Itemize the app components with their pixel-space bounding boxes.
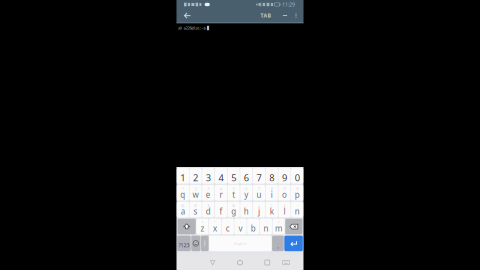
button[interactable]: : (234, 219, 247, 234)
button[interactable]: 5 (228, 185, 240, 200)
staticText: + (258, 203, 260, 208)
button[interactable]: Switch keyboard (277, 255, 295, 270)
button[interactable] (253, 168, 265, 184)
button[interactable]: 6 (240, 185, 252, 200)
button[interactable]: + (253, 202, 265, 217)
button[interactable]: ! (260, 219, 272, 234)
button[interactable]: " (209, 219, 221, 234)
button[interactable] (177, 168, 189, 184)
staticText: ?123 (178, 242, 189, 249)
staticText: i (271, 189, 273, 200)
staticText: * (201, 220, 203, 225)
staticText: 2 (194, 186, 196, 191)
staticText: English (234, 241, 246, 246)
staticText: e (206, 189, 211, 200)
button[interactable]: ) (278, 202, 291, 217)
button[interactable]: Back (178, 9, 195, 22)
staticText: v (238, 223, 242, 234)
button[interactable]: Home (226, 255, 254, 270)
staticText: & (232, 203, 235, 208)
staticText: : (240, 220, 241, 225)
button[interactable]: _ (215, 202, 227, 217)
staticText: 6 (245, 186, 247, 191)
button[interactable]: 3 (202, 185, 214, 200)
button[interactable]: 0 (291, 185, 303, 200)
staticText: n (263, 223, 268, 234)
button[interactable] (240, 168, 252, 184)
button[interactable] (291, 168, 303, 184)
button[interactable]: - (240, 202, 252, 217)
button[interactable] (228, 168, 240, 184)
staticText: 2 (193, 171, 198, 184)
staticText: _ (220, 203, 222, 208)
staticText: ) (284, 203, 285, 208)
staticText: ( (271, 203, 272, 208)
staticText: TAB (260, 12, 271, 19)
button[interactable] (266, 168, 278, 184)
button[interactable]: More options (292, 9, 299, 22)
button[interactable]: ' (222, 219, 234, 234)
button[interactable]: ? (272, 219, 285, 234)
staticText: 9 (283, 186, 285, 191)
button[interactable] (278, 168, 291, 184)
staticText: 4 (218, 171, 223, 184)
button[interactable]: 7 (253, 185, 265, 200)
staticText: # (194, 203, 197, 208)
staticText: 8 (269, 171, 274, 184)
button[interactable]: ~ (291, 202, 303, 217)
button[interactable]: 4 (215, 185, 227, 200)
staticText: 3 (206, 171, 211, 184)
staticText: y (244, 189, 248, 200)
button[interactable] (272, 236, 284, 251)
staticText: @ (181, 203, 185, 208)
staticText: . (277, 240, 279, 251)
staticText: ' (227, 220, 228, 225)
button[interactable]: 9 (278, 185, 291, 200)
button[interactable]: Emoji (191, 236, 200, 251)
button[interactable]: & (228, 202, 240, 217)
button[interactable]: ; (247, 219, 259, 234)
button[interactable] (189, 168, 202, 184)
staticText: ! (265, 220, 266, 225)
button[interactable]: 8 (266, 185, 278, 200)
button[interactable]: Back (199, 255, 226, 270)
button[interactable]: 1 (177, 185, 189, 200)
button[interactable]: New session (280, 9, 290, 22)
button[interactable]: Language (201, 236, 209, 251)
staticText: q (180, 189, 185, 200)
staticText: o (282, 189, 287, 200)
staticText: 7 (258, 186, 260, 191)
button[interactable]: Recents (254, 255, 281, 270)
button[interactable]: Enter (284, 236, 303, 251)
button[interactable] (177, 236, 191, 251)
button[interactable] (215, 168, 227, 184)
staticText: 1 (180, 171, 185, 184)
button[interactable]: 2 (189, 185, 202, 200)
button[interactable]: Shift (178, 219, 196, 234)
staticText: 9 (282, 171, 287, 184)
button[interactable]: ( (266, 202, 278, 217)
button[interactable] (202, 168, 214, 184)
button[interactable]: Delete (285, 219, 302, 234)
staticText: 1 (182, 186, 184, 191)
staticText: " (214, 220, 216, 225)
staticText: n (295, 206, 300, 217)
button[interactable]: @ (177, 202, 189, 217)
staticText: l (283, 206, 285, 217)
button[interactable]: * (196, 219, 208, 234)
button[interactable]: # (189, 202, 202, 217)
staticText: 7 (256, 171, 261, 184)
button[interactable]: $ (202, 202, 214, 217)
staticText: m (275, 223, 282, 234)
staticText: u (256, 189, 261, 200)
staticText: h (244, 206, 249, 217)
